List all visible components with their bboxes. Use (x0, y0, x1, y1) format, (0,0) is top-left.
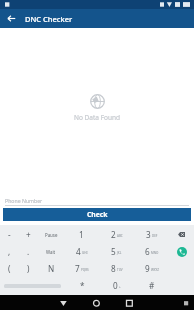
button[interactable]: Phone Number (5, 195, 189, 205)
button[interactable]: - (0, 226, 19, 243)
staticText: 5 (111, 246, 116, 257)
button[interactable]: # (134, 277, 169, 294)
button[interactable]: Space (0, 277, 65, 294)
staticText: 1 (79, 229, 84, 240)
button[interactable]: 2 (99, 226, 134, 243)
staticText: + (119, 285, 121, 289)
button[interactable]: 6 (134, 243, 169, 260)
staticText: ) (27, 263, 30, 274)
staticText: . (27, 246, 30, 257)
staticText: + (26, 229, 31, 240)
staticText: 0 (113, 280, 118, 291)
staticText: JKL (117, 251, 122, 255)
staticText: * (80, 280, 85, 291)
staticText: 7 (75, 263, 80, 274)
button[interactable]: 0 (99, 277, 134, 294)
staticText: GHI (82, 251, 88, 255)
button[interactable]: , (0, 243, 19, 260)
button[interactable]: . (19, 243, 38, 260)
button[interactable]: + (19, 226, 38, 243)
button[interactable]: ( (0, 260, 19, 277)
button[interactable]: Backspace (169, 226, 194, 243)
staticText: ( (8, 263, 11, 274)
button[interactable]: * (65, 277, 99, 294)
button[interactable]: 4 (64, 243, 99, 260)
staticText: No Data Found (74, 113, 120, 122)
staticText: 9 (145, 263, 150, 274)
staticText: DNC Checker (25, 14, 73, 24)
button[interactable]: 9 (134, 260, 169, 277)
staticText: PQRS (81, 268, 89, 272)
staticText: ABC (117, 234, 123, 238)
staticText: 2 (111, 229, 116, 240)
staticText: 8 (111, 263, 116, 274)
staticText: Pause (45, 232, 58, 238)
staticText: Phone Number (5, 197, 43, 204)
staticText: Check (87, 210, 108, 219)
button[interactable]: N (38, 260, 64, 277)
button[interactable]: Wait (38, 243, 64, 260)
button[interactable]: ) (19, 260, 38, 277)
button[interactable]: 8 (99, 260, 134, 277)
staticText: Wait (46, 249, 56, 255)
staticText: 3 (146, 229, 151, 240)
button[interactable]: 3 (134, 226, 169, 243)
staticText: - (8, 229, 11, 240)
staticText: N (48, 263, 55, 274)
staticText: TUV (117, 268, 123, 272)
staticText: 4 (76, 246, 81, 257)
staticText: 6 (145, 246, 150, 257)
staticText: MNO (151, 251, 159, 255)
staticText: , (8, 246, 11, 257)
button[interactable]: Navigate up (0, 9, 22, 28)
button[interactable]: 7 (64, 260, 99, 277)
button[interactable]: Call (169, 243, 194, 260)
button[interactable]: 5 (99, 243, 134, 260)
staticText: DEF (152, 234, 158, 238)
button[interactable]: Check (3, 208, 191, 221)
staticText: # (149, 280, 155, 291)
button[interactable]: 1 (64, 226, 99, 243)
staticText: WXYZ (151, 268, 159, 272)
button[interactable]: Pause (38, 226, 64, 243)
